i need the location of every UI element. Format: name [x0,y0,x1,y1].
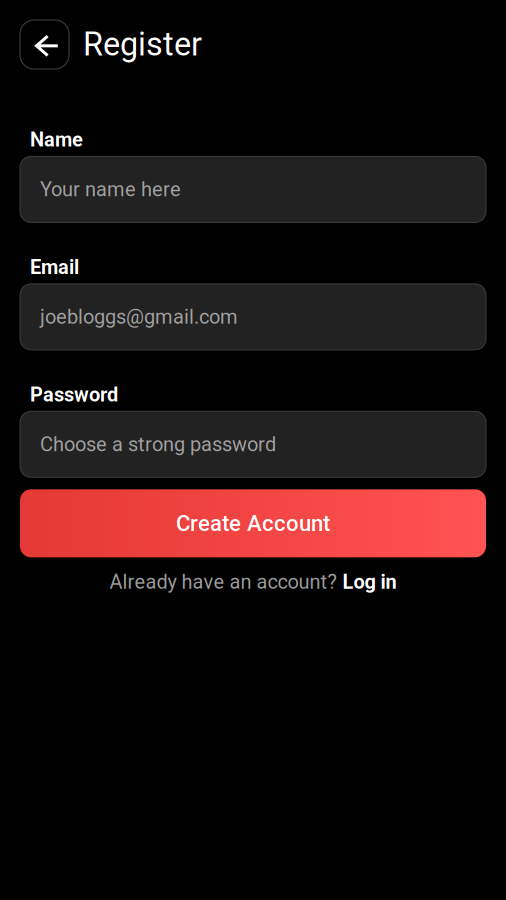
staticText: Name [30,128,83,151]
button[interactable]: joebloggs@gmail.com [20,284,486,350]
staticText: Password [30,383,118,406]
staticText: joebloggs@gmail.com [40,305,238,329]
button[interactable]: Back [20,20,69,69]
staticText: Register [83,25,202,63]
button[interactable]: Create Account [20,489,486,557]
staticText: Choose a strong password [40,433,276,456]
staticText: Create Account [176,510,330,536]
staticText: Already have an account? [109,570,336,594]
staticText: Log in [342,570,396,594]
button[interactable]: Already have an account? [20,570,486,594]
staticText: Email [30,255,79,279]
button[interactable]: Choose a strong password [20,411,486,477]
button[interactable]: Your name here [20,156,486,222]
staticText: Your name here [40,178,181,201]
